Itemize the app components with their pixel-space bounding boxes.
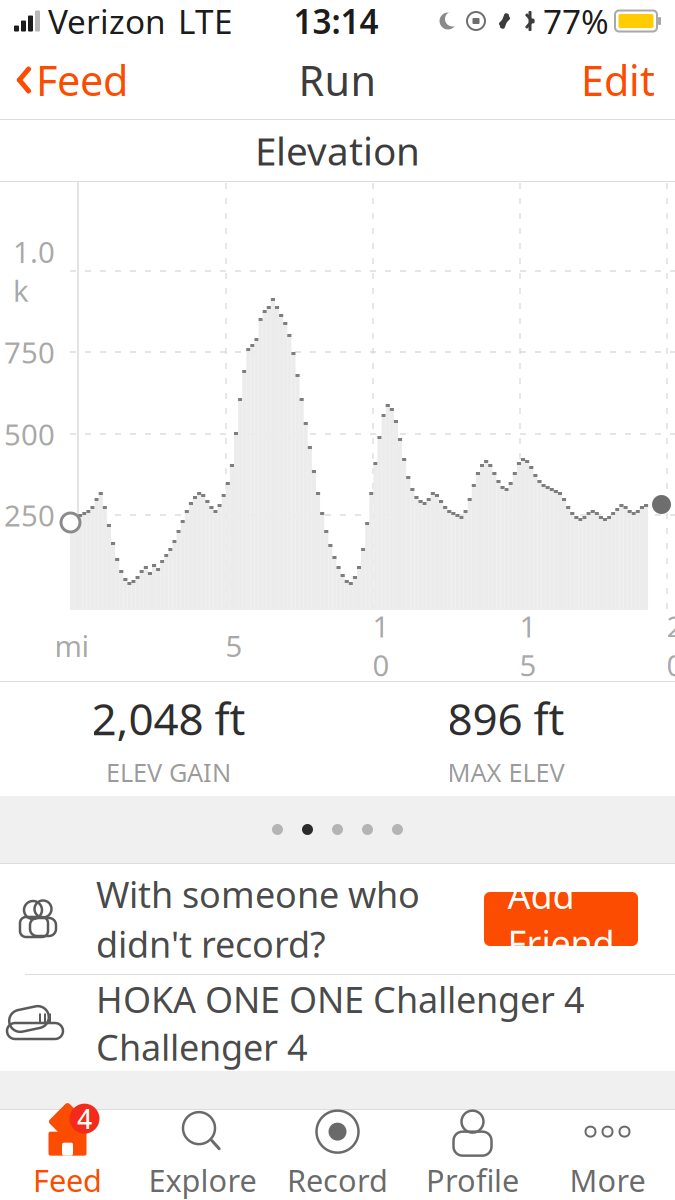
staticText: Elevation <box>255 125 420 176</box>
staticText: 10 <box>372 606 389 684</box>
staticText: HOKA ONE ONE Challenger 4 Challenger 4 <box>96 975 585 1071</box>
staticText: LTE <box>178 0 233 43</box>
staticText: 2,048 ft <box>91 689 245 747</box>
button[interactable]: Profile <box>405 1110 540 1199</box>
button[interactable]: HOKA ONE ONE Challenger 4 Challenger 4 <box>0 975 675 1071</box>
button[interactable]: 4 <box>0 1110 135 1199</box>
staticText: More <box>569 1160 645 1200</box>
staticText: 500 <box>4 414 55 453</box>
staticText: didn't record? <box>96 920 326 968</box>
staticText: 77% <box>543 0 609 43</box>
staticText: Verizon <box>48 0 166 43</box>
staticText: ELEV GAIN <box>106 755 231 789</box>
staticText: Feed <box>33 1160 102 1200</box>
button[interactable]: More <box>540 1110 675 1199</box>
button[interactable]: Record <box>270 1110 405 1199</box>
staticText: Edit <box>581 53 655 107</box>
staticText: 896 ft <box>447 689 564 747</box>
staticText: Explore <box>148 1160 256 1200</box>
staticText: 13:14 <box>293 0 378 43</box>
button[interactable]: Edit <box>561 41 675 119</box>
staticText: 5 <box>225 626 242 665</box>
staticText: Feed <box>36 53 128 107</box>
staticText: With someone who <box>96 870 420 918</box>
button[interactable]: Explore <box>135 1110 270 1199</box>
staticText: 250 <box>4 495 55 534</box>
staticText: Record <box>287 1160 388 1200</box>
staticText: 750 <box>4 332 55 371</box>
staticText: 15 <box>519 606 536 684</box>
staticText: Profile <box>426 1160 519 1200</box>
button[interactable]: Add Friend <box>484 892 638 946</box>
button[interactable]: Feed <box>0 41 144 119</box>
staticText: 1.0k <box>13 232 55 310</box>
staticText: Add Friend <box>507 871 614 967</box>
staticText: MAX ELEV <box>447 755 564 789</box>
staticText: Run <box>298 53 376 107</box>
staticText: mi <box>54 626 89 665</box>
staticText: 4 <box>77 1101 92 1136</box>
staticText: 20 <box>666 606 675 684</box>
